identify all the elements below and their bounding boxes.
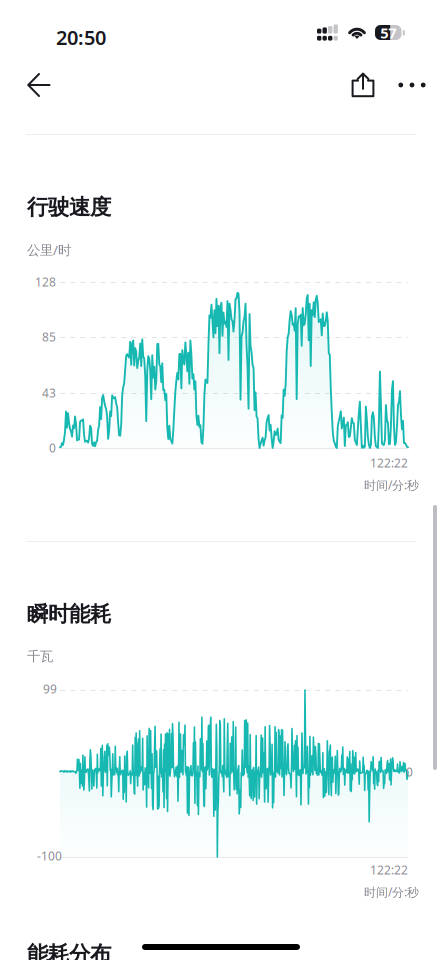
staticText: 43 <box>42 385 56 401</box>
staticText: 122:22 <box>370 862 408 878</box>
button[interactable]: Share <box>341 63 385 107</box>
staticText: -100 <box>37 848 62 864</box>
button[interactable]: More options <box>390 63 434 107</box>
staticText: 千瓦 <box>27 648 53 664</box>
staticText: 0 <box>406 764 413 780</box>
staticText: 公里/时 <box>27 241 71 259</box>
staticText: 瞬时能耗 <box>27 601 111 627</box>
staticText: 行驶速度 <box>27 194 111 220</box>
staticText: 时间/分:秒 <box>364 477 419 493</box>
staticText: 128 <box>35 274 56 290</box>
staticText: 85 <box>42 329 56 345</box>
button[interactable]: Back <box>17 63 61 107</box>
staticText: 20:50 <box>56 24 106 51</box>
staticText: 99 <box>43 681 57 697</box>
staticText: 时间/分:秒 <box>364 884 419 900</box>
staticText: 0 <box>49 440 56 456</box>
staticText: 能耗分布 <box>27 941 111 960</box>
staticText: 57 <box>380 23 396 42</box>
staticText: 122:22 <box>370 455 408 471</box>
